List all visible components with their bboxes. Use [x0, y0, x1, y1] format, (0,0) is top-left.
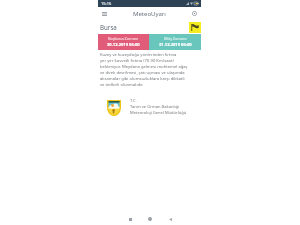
staticText: MeteoUyarı: [133, 10, 166, 18]
button[interactable]: Help: [190, 9, 199, 18]
staticText: T.C.: [130, 98, 137, 104]
button[interactable]: Recents: [125, 214, 135, 224]
staticText: Meteoroloji Genel Müdürlüğü: [130, 110, 187, 116]
staticText: Bursa: [100, 23, 117, 31]
staticText: Tarım ve Orman Bakanlığı: [130, 104, 180, 110]
staticText: Başlama Zamanı: [108, 36, 139, 41]
staticText: 31.12.2019 06:00: [159, 42, 192, 48]
staticText: Kuzey ve kuzeydoğu yönlerinden fırtına y…: [100, 52, 190, 88]
button[interactable]: Warning level: [189, 22, 201, 33]
button[interactable]: Home: [145, 214, 155, 224]
button[interactable]: Back: [165, 214, 175, 224]
staticText: 30.12.2019 06:00: [107, 42, 140, 48]
staticText: Bitiş Zamanı: [164, 36, 187, 41]
button[interactable]: Başlama Zamanı: [98, 34, 149, 50]
button[interactable]: Bitiş Zamanı: [149, 34, 201, 50]
button[interactable]: Menu: [100, 9, 109, 18]
staticText: 15:16: [101, 1, 112, 6]
